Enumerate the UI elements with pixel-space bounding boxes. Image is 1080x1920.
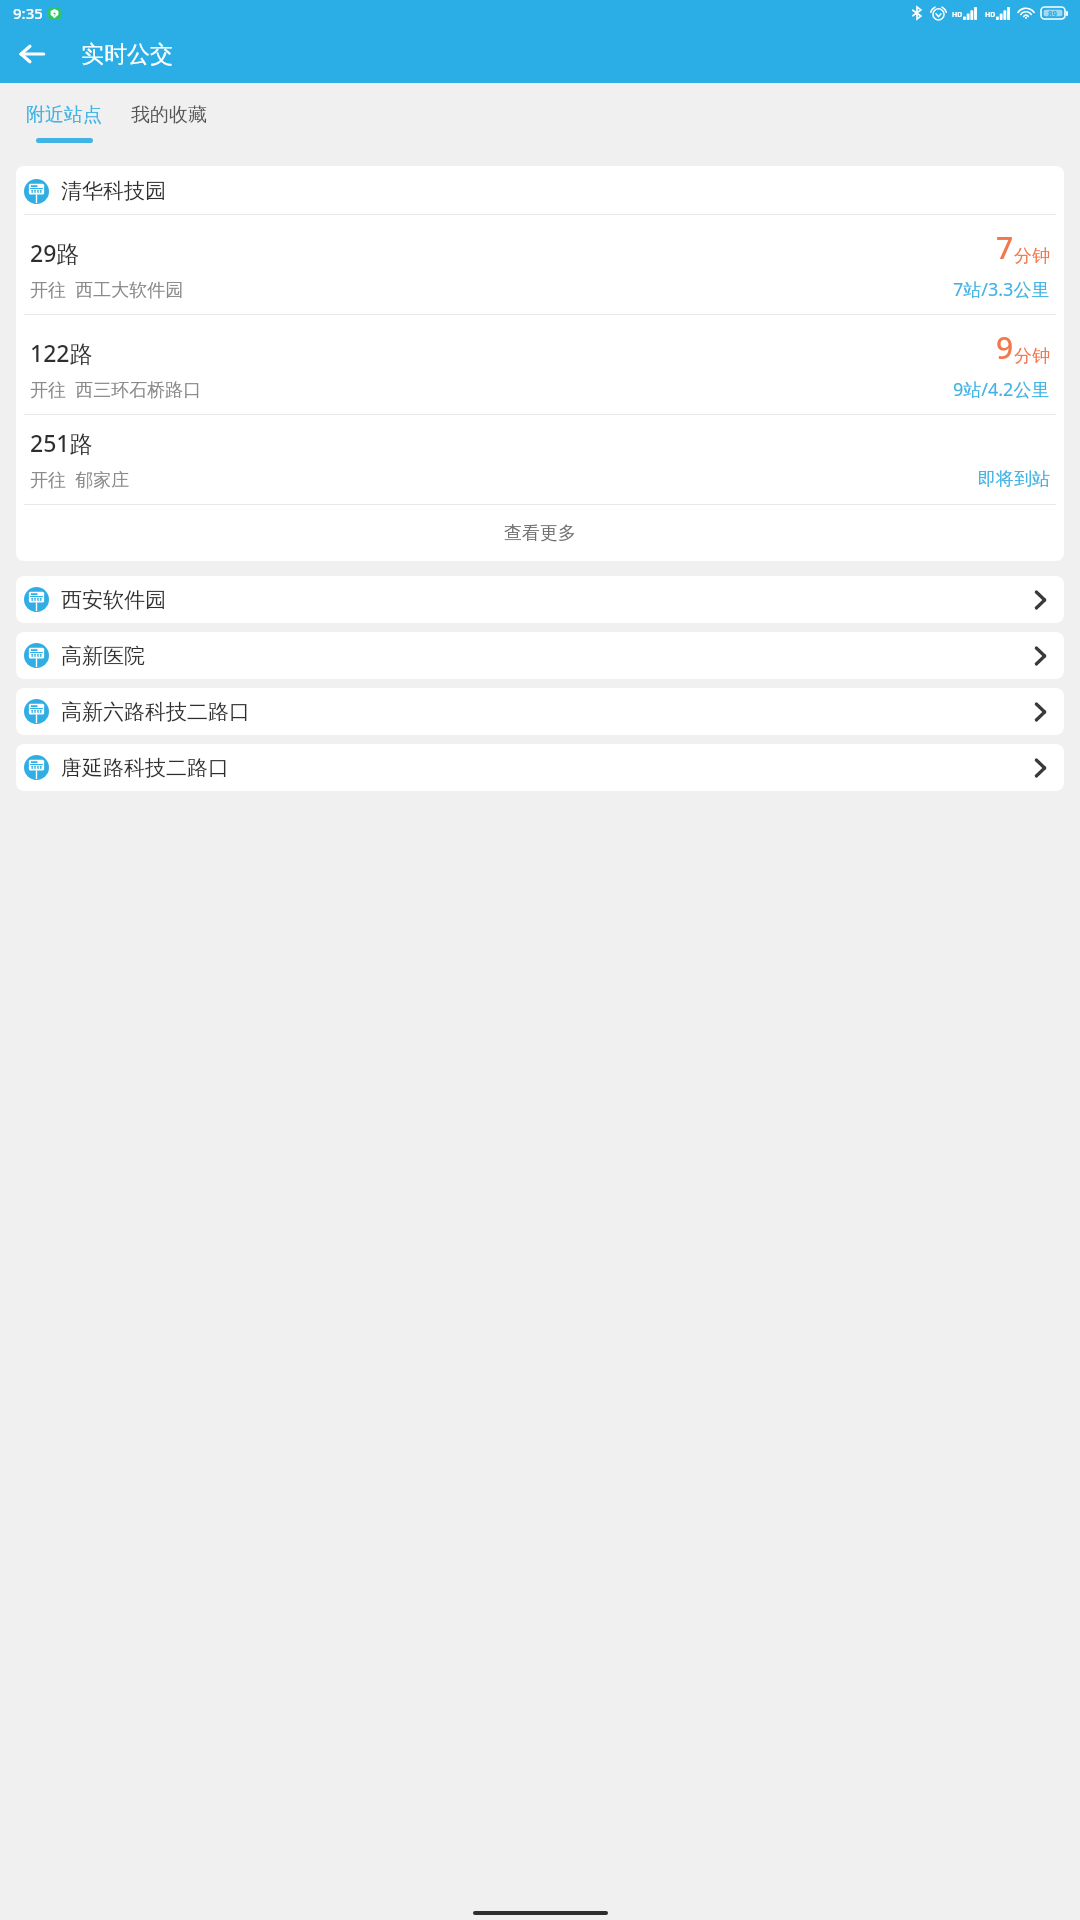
staticText: 开往 郁家庄 xyxy=(30,467,130,492)
button[interactable]: 唐延路科技二路口 xyxy=(16,744,1064,791)
staticText: 122路 xyxy=(30,337,93,368)
staticText: 89 xyxy=(1048,8,1058,19)
staticText: 实时公交 xyxy=(81,40,173,69)
staticText: 高新六路科技二路口 xyxy=(61,699,250,725)
staticText: 分钟 xyxy=(1014,245,1050,268)
button[interactable]: 高新医院 xyxy=(16,632,1064,679)
staticText: 附近站点 xyxy=(26,103,102,127)
button[interactable]: 查看更多 xyxy=(16,505,1064,561)
staticText: 我的收藏 xyxy=(131,103,207,127)
staticText: 西安软件园 xyxy=(61,587,166,613)
staticText: 高新医院 xyxy=(61,643,145,669)
staticText: 即将到站 xyxy=(978,468,1050,491)
button[interactable]: 清华科技园 xyxy=(16,166,1064,561)
staticText: 查看更多 xyxy=(504,522,576,545)
button[interactable]: 122路 xyxy=(16,315,1064,414)
staticText: 29路 xyxy=(30,237,80,268)
staticText: 开往 西三环石桥路口 xyxy=(30,377,202,402)
button[interactable]: 附近站点 xyxy=(26,103,102,143)
staticText: 开往 西工大软件园 xyxy=(30,277,184,302)
staticText: HD xyxy=(952,10,963,20)
staticText: 251路 xyxy=(30,427,93,458)
staticText: 7站/3.3公里 xyxy=(953,277,1050,302)
staticText: 清华科技园 xyxy=(61,178,166,204)
staticText: 9:35 xyxy=(13,3,43,23)
staticText: HD xyxy=(985,10,996,20)
staticText: 唐延路科技二路口 xyxy=(61,755,229,781)
staticText: 9 xyxy=(996,327,1014,368)
button[interactable]: 251路 xyxy=(16,415,1064,504)
button[interactable]: 西安软件园 xyxy=(16,576,1064,623)
staticText: 7 xyxy=(996,227,1014,268)
button[interactable]: 高新六路科技二路口 xyxy=(16,688,1064,735)
staticText: 分钟 xyxy=(1014,345,1050,368)
button[interactable]: 我的收藏 xyxy=(127,103,211,127)
button[interactable]: 29路 xyxy=(16,215,1064,314)
staticText: 9站/4.2公里 xyxy=(953,377,1050,402)
button[interactable]: 返回 xyxy=(8,30,56,78)
